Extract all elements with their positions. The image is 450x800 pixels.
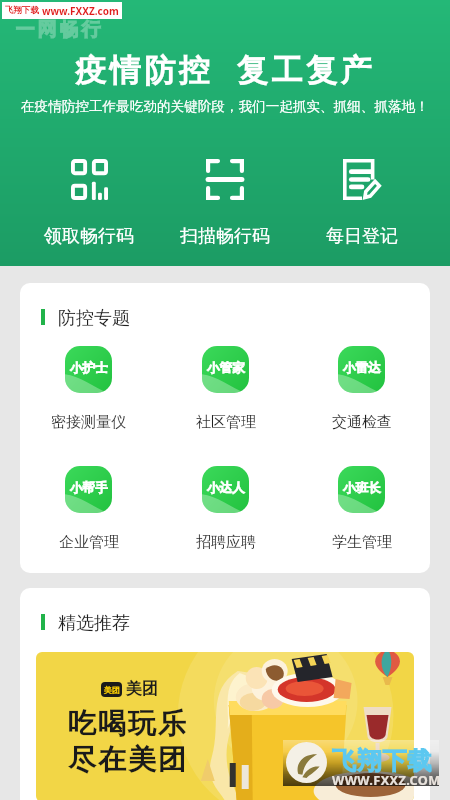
staticText: 一网畅行 — [14, 18, 102, 42]
staticText: 吃喝玩乐 — [67, 706, 187, 741]
staticText: 社区管理 — [196, 413, 256, 432]
staticText: 小帮手 — [70, 480, 108, 496]
staticText: 小达人 — [207, 480, 245, 496]
staticText: 招聘应聘 — [196, 533, 256, 552]
button[interactable]: 小雷达 — [313, 346, 410, 432]
button[interactable]: 小达人 — [177, 466, 274, 552]
staticText: 扫描畅行码 — [180, 225, 270, 248]
button[interactable]: 小帮手 — [40, 466, 137, 552]
staticText: 飞翔下载 — [5, 5, 39, 16]
staticText: 领取畅行码 — [44, 225, 134, 248]
staticText: 密接测量仪 — [51, 413, 126, 432]
staticText: 尽在美团 — [67, 742, 187, 777]
staticText: WWW.FXXZ.COM — [332, 771, 441, 788]
staticText: 小班长 — [343, 480, 381, 496]
button[interactable]: 小管家 — [177, 346, 274, 432]
staticText: 每日登记 — [326, 225, 398, 248]
staticText: 疫情防控 复工复产 — [75, 48, 376, 90]
staticText: 在疫情防控工作最吃劲的关键阶段，我们一起抓实、抓细、抓落地！ — [21, 98, 429, 115]
button[interactable]: 小护士 — [40, 346, 137, 432]
staticText: 小管家 — [207, 360, 245, 376]
button[interactable]: 小班长 — [313, 466, 410, 552]
button[interactable]: 美团 — [36, 652, 414, 800]
staticText: 学生管理 — [332, 533, 392, 552]
staticText: 精选推荐 — [58, 612, 130, 635]
staticText: 小护士 — [70, 360, 108, 376]
staticText: 美团 — [104, 685, 120, 695]
button[interactable]: 领取畅行码 — [41, 158, 137, 248]
other: 每日登记 — [343, 159, 381, 200]
staticText: 小雷达 — [343, 360, 381, 376]
staticText: 美团 — [126, 679, 158, 699]
staticText: 企业管理 — [59, 533, 119, 552]
staticText: 交通检查 — [332, 413, 392, 432]
staticText: 飞翔下载 — [332, 746, 433, 776]
staticText: www.FXXZ.com — [42, 4, 119, 18]
staticText: 防控专题 — [58, 307, 130, 330]
other: 扫描畅行码 — [206, 159, 244, 200]
button[interactable]: 每日登记 — [314, 158, 410, 248]
other: 领取畅行码 — [71, 159, 108, 200]
button[interactable]: 扫描畅行码 — [177, 158, 273, 248]
